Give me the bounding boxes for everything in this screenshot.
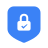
button[interactable]: Secure — verified [0,0,48,48]
